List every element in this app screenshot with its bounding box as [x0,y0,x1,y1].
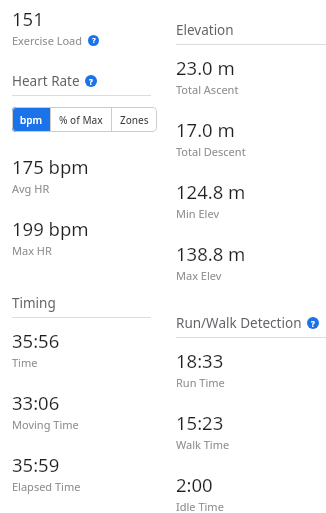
staticText: Elapsed Time [12,479,81,494]
staticText: Max HR [12,243,52,258]
staticText: 18:33 [176,348,224,373]
staticText: 151 [12,6,44,31]
staticText: Avg HR [12,181,50,196]
staticText: 175 bpm [12,154,89,179]
staticText: Heart Rate [12,72,80,90]
staticText: Total Ascent [176,82,239,97]
staticText: Exercise Load [12,33,83,48]
staticText: Time [12,355,38,370]
button[interactable]: Info about Exercise Load [88,35,99,46]
staticText: Walk Time [176,437,230,452]
staticText: 15:23 [176,410,224,435]
staticText: Total Descent [176,144,246,159]
staticText: Zones [120,113,149,127]
staticText: Run/Walk Detection [176,314,302,332]
staticText: Max Elev [176,268,222,283]
staticText: ? [89,76,93,87]
button[interactable]: Zones [112,107,157,132]
staticText: 35:56 [12,328,60,353]
staticText: % of Max [59,113,103,127]
staticText: Moving Time [12,417,79,432]
button[interactable]: bpm [12,107,50,132]
staticText: 17.0 m [176,117,235,142]
staticText: Min Elev [176,206,219,221]
staticText: bpm [20,113,42,127]
button[interactable]: Info about Run/Walk Detection [307,317,319,329]
staticText: Run Time [176,375,225,390]
staticText: Timing [12,294,56,312]
staticText: ? [311,318,315,329]
staticText: 33:06 [12,390,60,415]
staticText: ? [92,36,96,46]
button[interactable]: % of Max [51,107,111,132]
staticText: 199 bpm [12,216,89,241]
staticText: 138.8 m [176,241,246,266]
button[interactable]: Info about Heart Rate [85,75,97,87]
staticText: 35:59 [12,452,60,477]
staticText: 124.8 m [176,179,246,204]
staticText: 2:00 [176,472,213,497]
staticText: Elevation [176,21,234,39]
staticText: Idle Time [176,499,224,513]
staticText: 23.0 m [176,55,235,80]
